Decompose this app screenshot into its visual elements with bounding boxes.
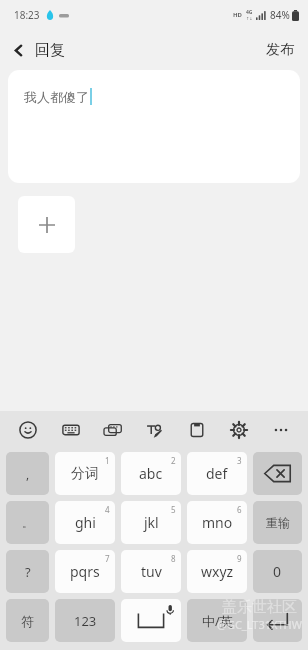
staticText: 符 [21,613,34,629]
button[interactable]: 0 [253,550,302,593]
staticText: @GC_LT31XTHW [217,617,302,632]
staticText: 123 [74,612,97,630]
button[interactable]: , [6,452,49,495]
button[interactable]: Enter [253,599,302,642]
staticText: mno [202,513,233,532]
button[interactable]: Emoji [6,411,49,449]
button[interactable]: ghi [55,501,115,544]
staticText: 中/英 [202,612,233,630]
staticText: HD [233,11,242,19]
staticText: 5 [171,504,176,515]
staticText: 我人都傻了 [24,89,89,105]
staticText: 回复 [35,41,65,60]
staticText: 8 [171,553,176,564]
button[interactable]: Split keyboard [92,411,134,449]
button[interactable]: Settings [218,411,260,449]
staticText: pqrs [70,562,100,581]
button[interactable]: Handwriting [134,411,176,449]
staticText: def [206,464,228,483]
staticText: 7 [105,553,110,564]
staticText: jkl [144,513,159,532]
button[interactable]: Clipboard [176,411,218,449]
button[interactable]: tuv [121,550,181,593]
button[interactable]: 我人都傻了 [8,70,300,183]
staticText: 18:23 [14,8,40,22]
staticText: 84% [270,8,290,22]
button[interactable]: ? [6,550,49,593]
button[interactable]: abc [121,452,181,495]
staticText: 重输 [266,515,290,530]
other: Back [11,43,26,58]
staticText: , [26,466,30,482]
button[interactable]: Backspace [253,452,302,495]
button[interactable]: Back [0,34,79,67]
staticText: ? [25,563,31,581]
staticText: 9 [237,553,242,564]
staticText: 2 [171,455,176,466]
staticText: 盖乐世社区 [222,598,297,617]
staticText: wxyz [201,562,234,581]
staticText: 4 [105,504,110,515]
button[interactable]: mno [187,501,247,544]
staticText: 3 [237,455,242,466]
staticText: abc [139,464,163,483]
button[interactable]: 123 [55,599,115,642]
button[interactable]: Keyboard layout [49,411,92,449]
staticText: 发布 [266,41,294,59]
button[interactable]: 。 [6,501,49,544]
button[interactable]: More [260,411,302,449]
staticText: tuv [141,562,162,581]
staticText: 1 [105,455,110,466]
button[interactable]: wxyz [187,550,247,593]
staticText: 6 [237,504,242,515]
button[interactable]: 分词 [55,452,115,495]
staticText: 。 [22,516,33,530]
button[interactable]: jkl [121,501,181,544]
button[interactable]: 中/英 [187,599,247,642]
button[interactable]: 发布 [252,32,308,68]
staticText: 4G [246,9,253,16]
button[interactable]: Space [121,599,181,642]
button[interactable]: 符 [6,599,49,642]
button[interactable]: def [187,452,247,495]
staticText: 0 [273,562,282,581]
button[interactable]: 重输 [253,501,302,544]
staticText: ↑↓ [246,16,253,21]
button[interactable]: Add image [18,196,75,253]
staticText: ghi [75,513,96,532]
staticText: 分词 [71,465,99,483]
button[interactable]: pqrs [55,550,115,593]
